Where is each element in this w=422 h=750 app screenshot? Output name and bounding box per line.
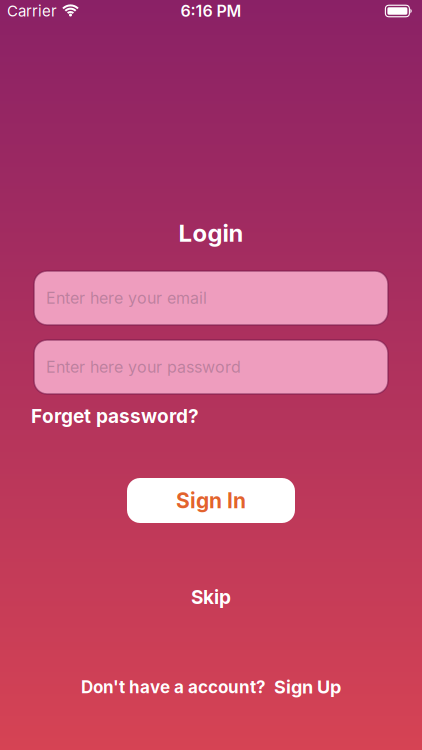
button[interactable]: Sign Up <box>274 676 341 698</box>
staticText: 6:16 PM <box>180 1 241 21</box>
staticText: Forget password? <box>31 404 199 427</box>
button[interactable]: Enter here your password <box>34 340 388 394</box>
staticText: Carrier <box>7 2 57 20</box>
button[interactable]: Enter here your email <box>34 271 388 325</box>
button[interactable]: Sign In <box>127 478 295 523</box>
staticText: Sign In <box>176 488 246 513</box>
staticText: Login <box>178 218 243 247</box>
staticText: Enter here your password <box>46 357 241 377</box>
staticText: Sign Up <box>274 676 341 698</box>
button[interactable]: Forget password? <box>31 404 199 427</box>
staticText: Skip <box>191 585 231 608</box>
staticText: Enter here your email <box>46 288 207 308</box>
staticText: Don't have a account? <box>81 677 266 697</box>
button[interactable]: Skip <box>191 586 231 608</box>
